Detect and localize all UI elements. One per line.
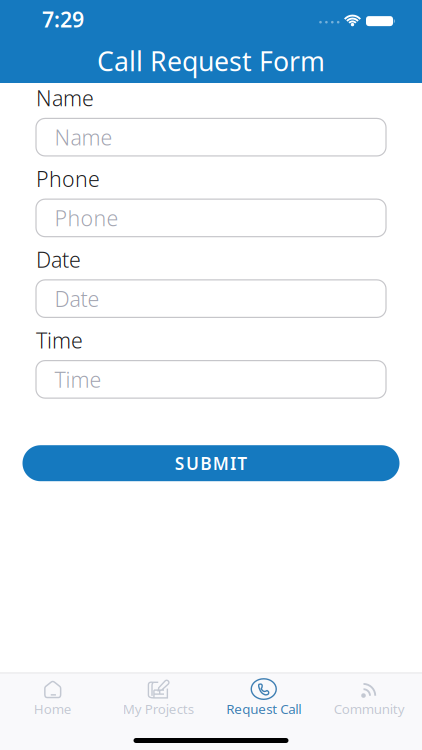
staticText: Phone (36, 164, 100, 193)
staticText: Call Request Form (97, 43, 325, 79)
staticText: Name (54, 123, 112, 151)
button[interactable]: Community (316, 679, 422, 718)
staticText: Name (36, 84, 94, 112)
button[interactable]: Name (36, 118, 386, 156)
staticText: B (200, 452, 211, 475)
staticText: Date (54, 284, 99, 313)
button[interactable]: Time (36, 361, 386, 398)
staticText: Community (334, 700, 405, 718)
staticText: U (186, 452, 199, 475)
button[interactable]: S (22, 445, 399, 481)
staticText: Time (36, 326, 83, 354)
staticText: 7:29 (42, 5, 84, 33)
staticText: M (213, 452, 229, 475)
staticText: Request Call (226, 700, 301, 718)
staticText: Date (36, 245, 81, 274)
button[interactable]: Request Call (211, 679, 316, 718)
button[interactable]: My Projects (105, 679, 211, 718)
staticText: I (230, 452, 236, 475)
button[interactable]: Home (0, 679, 105, 718)
staticText: S (175, 452, 185, 475)
staticText: T (237, 452, 247, 475)
button[interactable]: Phone (36, 199, 386, 237)
staticText: Home (34, 700, 72, 718)
staticText: Phone (54, 204, 118, 232)
staticText: My Projects (123, 700, 194, 718)
staticText: Time (54, 365, 101, 393)
button[interactable]: Date (36, 280, 386, 317)
